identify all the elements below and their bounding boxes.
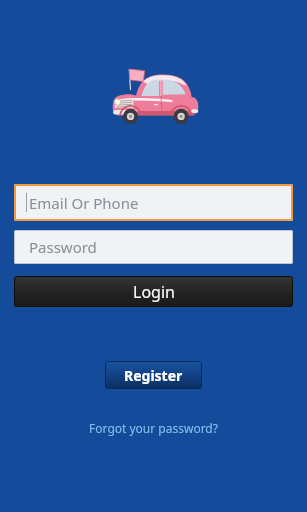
- staticText: Login: [133, 281, 175, 303]
- staticText: Email Or Phone: [29, 193, 139, 213]
- other: App logo: pink vintage car: [108, 66, 200, 126]
- staticText: Forgot your password?: [89, 420, 218, 436]
- button[interactable]: Email Or Phone: [14, 184, 293, 221]
- button[interactable]: Register: [105, 361, 202, 389]
- staticText: Password: [29, 237, 97, 257]
- button[interactable]: Forgot your password?: [0, 418, 307, 438]
- button[interactable]: Password: [14, 230, 293, 264]
- button[interactable]: Login: [14, 276, 293, 307]
- staticText: Register: [124, 366, 183, 385]
